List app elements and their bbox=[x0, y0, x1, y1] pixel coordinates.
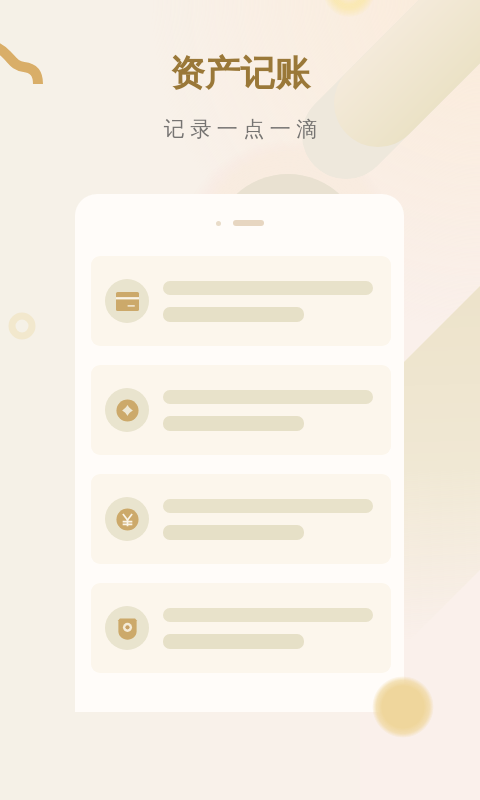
button[interactable] bbox=[91, 256, 391, 346]
button[interactable] bbox=[91, 474, 391, 564]
staticText: 记录一点一滴 bbox=[161, 116, 320, 142]
button[interactable] bbox=[91, 365, 391, 455]
button[interactable] bbox=[91, 583, 391, 673]
staticText: 资产记账 bbox=[170, 51, 310, 95]
